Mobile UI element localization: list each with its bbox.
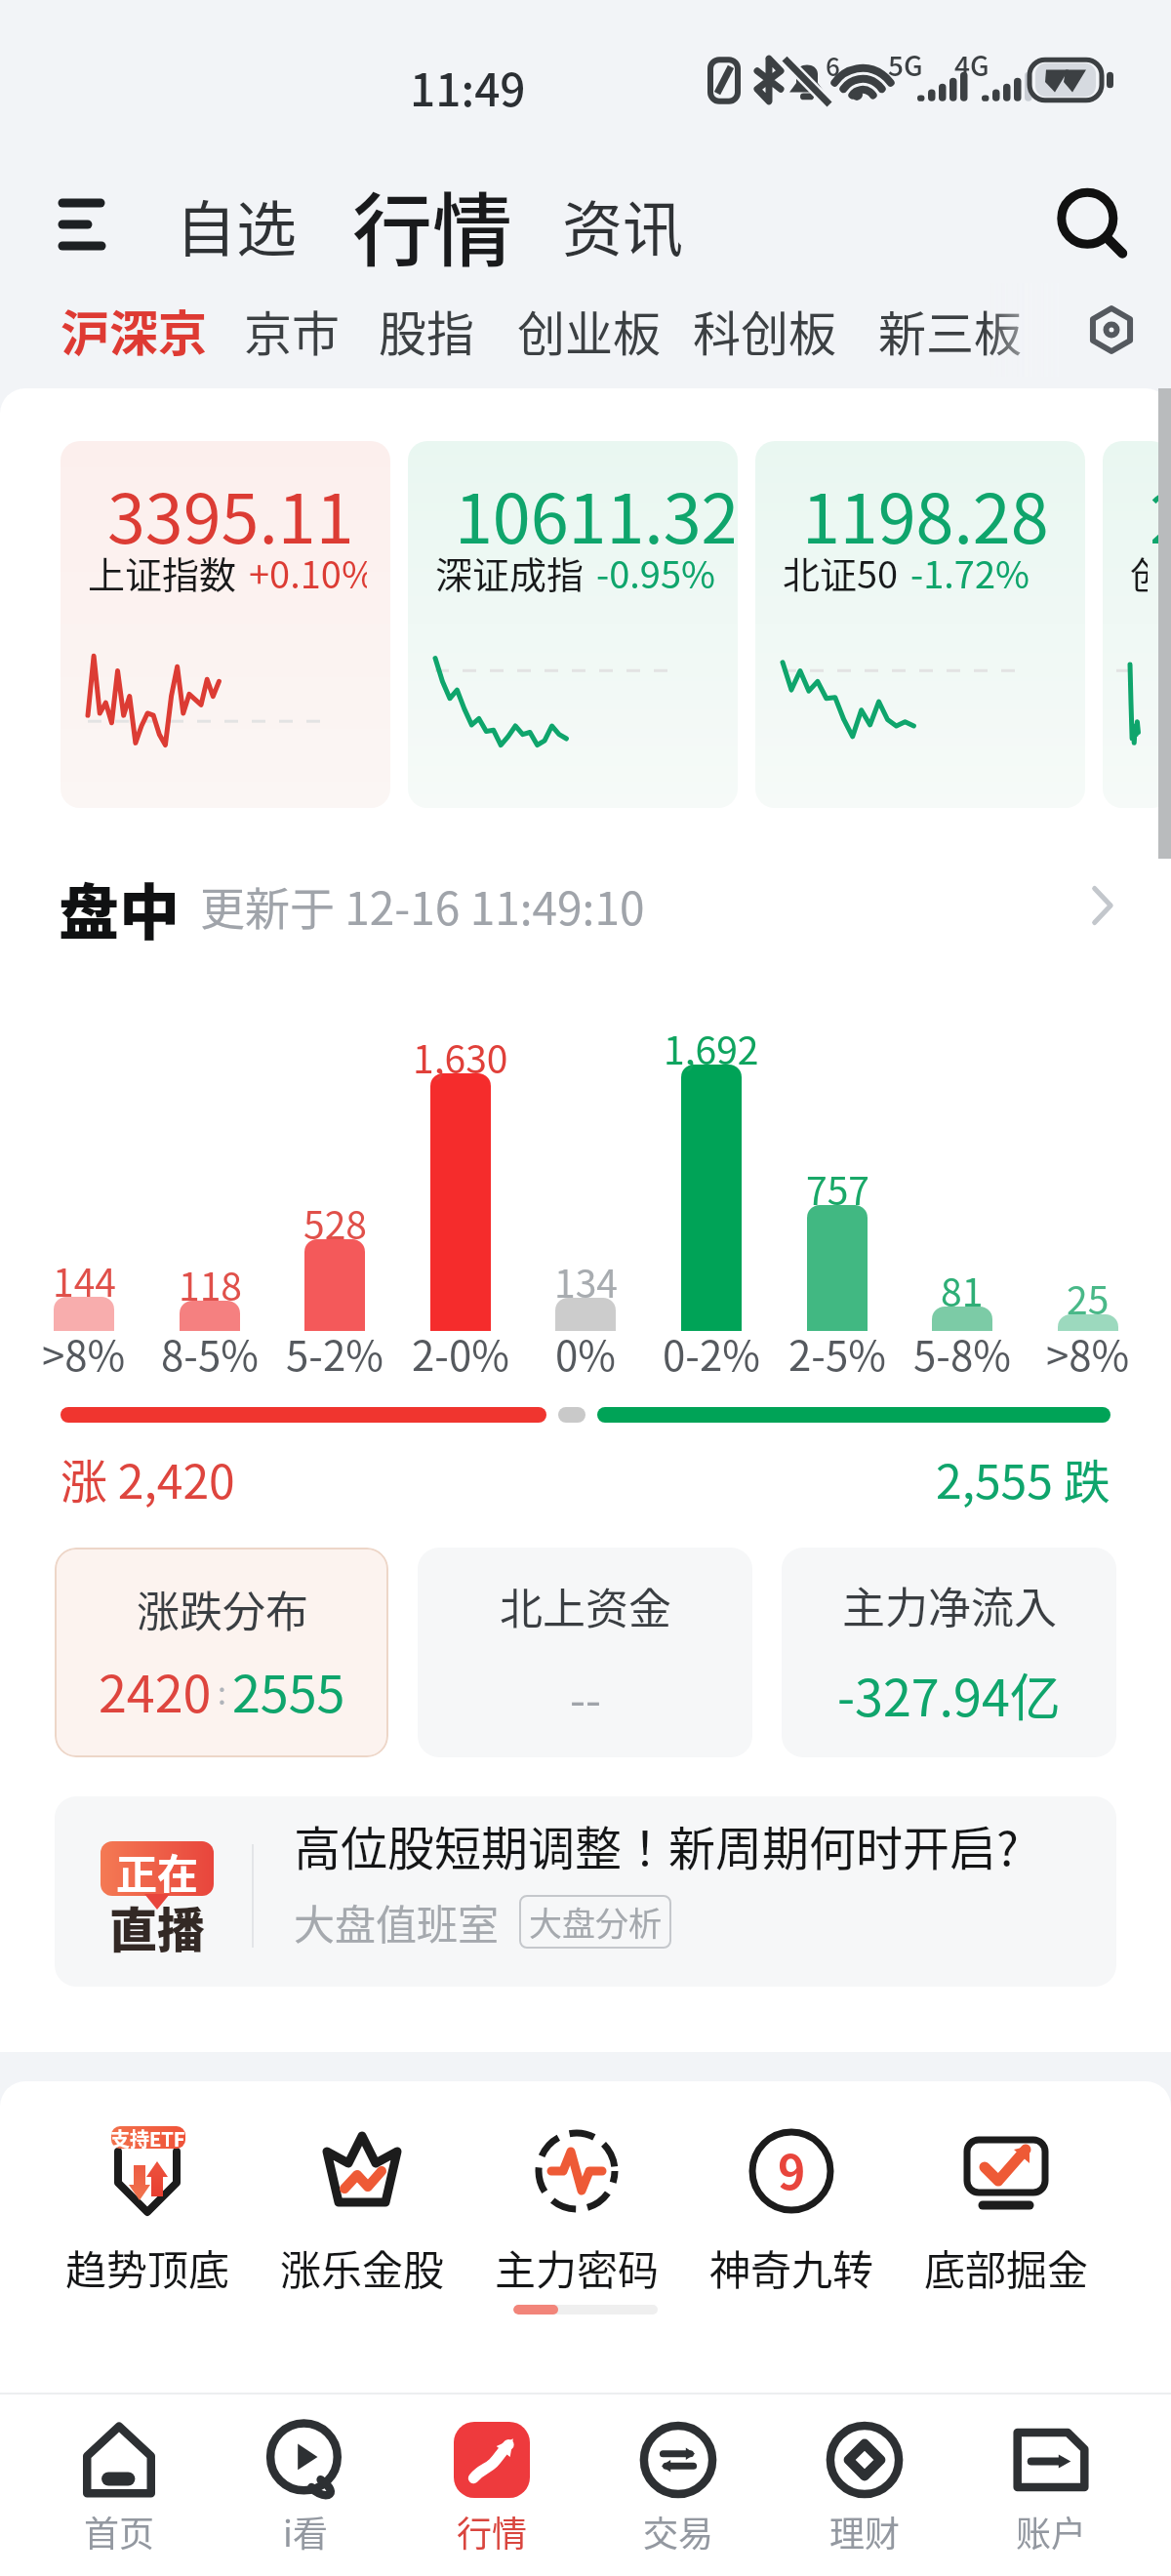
button[interactable]: 支持ETF bbox=[40, 2122, 255, 2297]
staticText: 757 bbox=[806, 1161, 869, 1216]
button[interactable]: 涨乐金股 bbox=[255, 2122, 469, 2297]
staticText: 支持ETF bbox=[110, 2124, 185, 2153]
button[interactable]: 创业板 bbox=[517, 296, 662, 365]
staticText: >8% bbox=[1046, 1323, 1130, 1383]
staticText: 神奇九转 bbox=[709, 2237, 874, 2297]
staticText: 首页 bbox=[84, 2506, 155, 2556]
staticText: -0.95% bbox=[596, 545, 714, 599]
button[interactable]: 行情 bbox=[399, 2422, 585, 2556]
staticText: 京市 bbox=[244, 296, 341, 365]
staticText: 0-2% bbox=[663, 1323, 760, 1383]
staticText: 2420 bbox=[99, 1654, 212, 1727]
staticText: 134 bbox=[554, 1254, 618, 1308]
staticText: 118 bbox=[179, 1257, 242, 1311]
staticText: 创业板 bbox=[517, 296, 662, 365]
button[interactable]: 首页 bbox=[26, 2422, 212, 2556]
button[interactable]: 主力净流入 bbox=[782, 1548, 1116, 1757]
staticText: 6 bbox=[826, 47, 840, 84]
staticText: 创业板指 bbox=[1130, 545, 1148, 599]
staticText: 科创板 bbox=[693, 296, 837, 365]
button[interactable]: 涨跌分布 bbox=[55, 1548, 388, 1757]
staticText: 2-5% bbox=[788, 1323, 886, 1383]
button[interactable]: 理财 bbox=[772, 2422, 957, 2556]
staticText: 底部掘金 bbox=[924, 2237, 1089, 2297]
button[interactable]: 底部掘金 bbox=[899, 2122, 1113, 2297]
staticText: 2-0% bbox=[412, 1323, 509, 1383]
staticText: 81 bbox=[941, 1263, 984, 1317]
staticText: 528 bbox=[303, 1195, 367, 1250]
staticText: 理财 bbox=[829, 2506, 901, 2556]
staticText: 更新于 12-16 11:49:10 bbox=[200, 873, 645, 939]
staticText: 账户 bbox=[1016, 2506, 1087, 2556]
staticText: : bbox=[218, 1669, 226, 1713]
button[interactable]: 北上资金 bbox=[418, 1548, 752, 1757]
staticText: 交易 bbox=[643, 2506, 714, 2556]
staticText: 3395.11 bbox=[107, 464, 354, 563]
staticText: 正在 bbox=[116, 1841, 199, 1896]
staticText: 0% bbox=[555, 1323, 616, 1383]
button[interactable]: 3395.11 bbox=[61, 441, 390, 808]
staticText: 趋势顶底 bbox=[65, 2237, 230, 2297]
button[interactable]: 沪深京 bbox=[61, 295, 207, 365]
button[interactable]: Menu bbox=[37, 181, 123, 267]
button[interactable]: 科创板 bbox=[693, 296, 837, 365]
staticText: 主力净流入 bbox=[842, 1574, 1057, 1636]
button[interactable]: 2066.12 bbox=[1103, 441, 1171, 808]
staticText: 高位股短期调整！新周期何时开启? bbox=[294, 1811, 1019, 1879]
button[interactable]: 9 bbox=[684, 2122, 899, 2297]
staticText: 涨乐金股 bbox=[280, 2237, 445, 2297]
staticText: 涨 2,420 bbox=[61, 1444, 235, 1512]
button[interactable]: Settings bbox=[1070, 289, 1152, 371]
staticText: >8% bbox=[42, 1323, 126, 1383]
button[interactable]: 正在 bbox=[55, 1796, 1116, 1987]
button[interactable]: 1198.28 bbox=[755, 441, 1085, 808]
staticText: 盘中 bbox=[59, 865, 181, 946]
button[interactable]: i看 bbox=[213, 2422, 398, 2556]
staticText: 大盘分析 bbox=[529, 1898, 662, 1946]
staticText: 9 bbox=[778, 2135, 806, 2203]
staticText: i看 bbox=[283, 2506, 328, 2556]
button[interactable]: 资讯 bbox=[562, 181, 684, 269]
button[interactable]: 交易 bbox=[585, 2422, 771, 2556]
staticText: +0.10% bbox=[249, 545, 367, 599]
staticText: 25 bbox=[1067, 1270, 1110, 1325]
staticText: 行情 bbox=[457, 2506, 528, 2556]
staticText: 直播 bbox=[109, 1892, 206, 1961]
staticText: 1,692 bbox=[664, 1021, 759, 1075]
staticText: 1,630 bbox=[413, 1029, 508, 1084]
button[interactable]: 10611.32 bbox=[408, 441, 738, 808]
staticText: 涨跌分布 bbox=[137, 1578, 308, 1640]
button[interactable]: 账户 bbox=[958, 2422, 1144, 2556]
button[interactable]: Search bbox=[1038, 171, 1146, 278]
staticText: 2555 bbox=[232, 1654, 345, 1727]
button[interactable]: 行情 bbox=[352, 167, 513, 283]
staticText: 4G bbox=[954, 45, 989, 85]
staticText: 144 bbox=[53, 1253, 116, 1308]
staticText: -327.94亿 bbox=[837, 1658, 1061, 1731]
staticText: 1198.28 bbox=[802, 464, 1049, 563]
staticText: 沪深京 bbox=[61, 295, 207, 365]
button[interactable]: 自选 bbox=[176, 181, 298, 269]
staticText: 5G bbox=[888, 45, 923, 85]
staticText: 主力密码 bbox=[495, 2237, 660, 2297]
staticText: 北上资金 bbox=[500, 1575, 671, 1637]
staticText: 10611.32 bbox=[455, 464, 734, 563]
button[interactable]: 京市 bbox=[244, 296, 341, 365]
button[interactable]: 股指 bbox=[379, 296, 475, 365]
staticText: 新三板 bbox=[878, 296, 1023, 365]
staticText: -- bbox=[570, 1665, 601, 1730]
staticText: 11:49 bbox=[410, 55, 526, 120]
staticText: 5-2% bbox=[286, 1323, 384, 1383]
staticText: -1.72% bbox=[910, 545, 1030, 599]
staticText: 2066.12 bbox=[1150, 464, 1167, 563]
staticText: 上证指数 bbox=[88, 545, 237, 599]
button[interactable]: 主力密码 bbox=[469, 2122, 684, 2297]
staticText: 2,555 跌 bbox=[936, 1444, 1110, 1512]
staticText: 股指 bbox=[379, 296, 475, 365]
staticText: 大盘值班室 bbox=[294, 1892, 500, 1952]
button[interactable]: 盘中 bbox=[59, 865, 1124, 946]
staticText: 深证成指 bbox=[435, 545, 585, 599]
staticText: 8-5% bbox=[161, 1323, 259, 1383]
button[interactable]: 新三板 bbox=[878, 296, 1023, 365]
staticText: 北证50 bbox=[783, 545, 899, 599]
